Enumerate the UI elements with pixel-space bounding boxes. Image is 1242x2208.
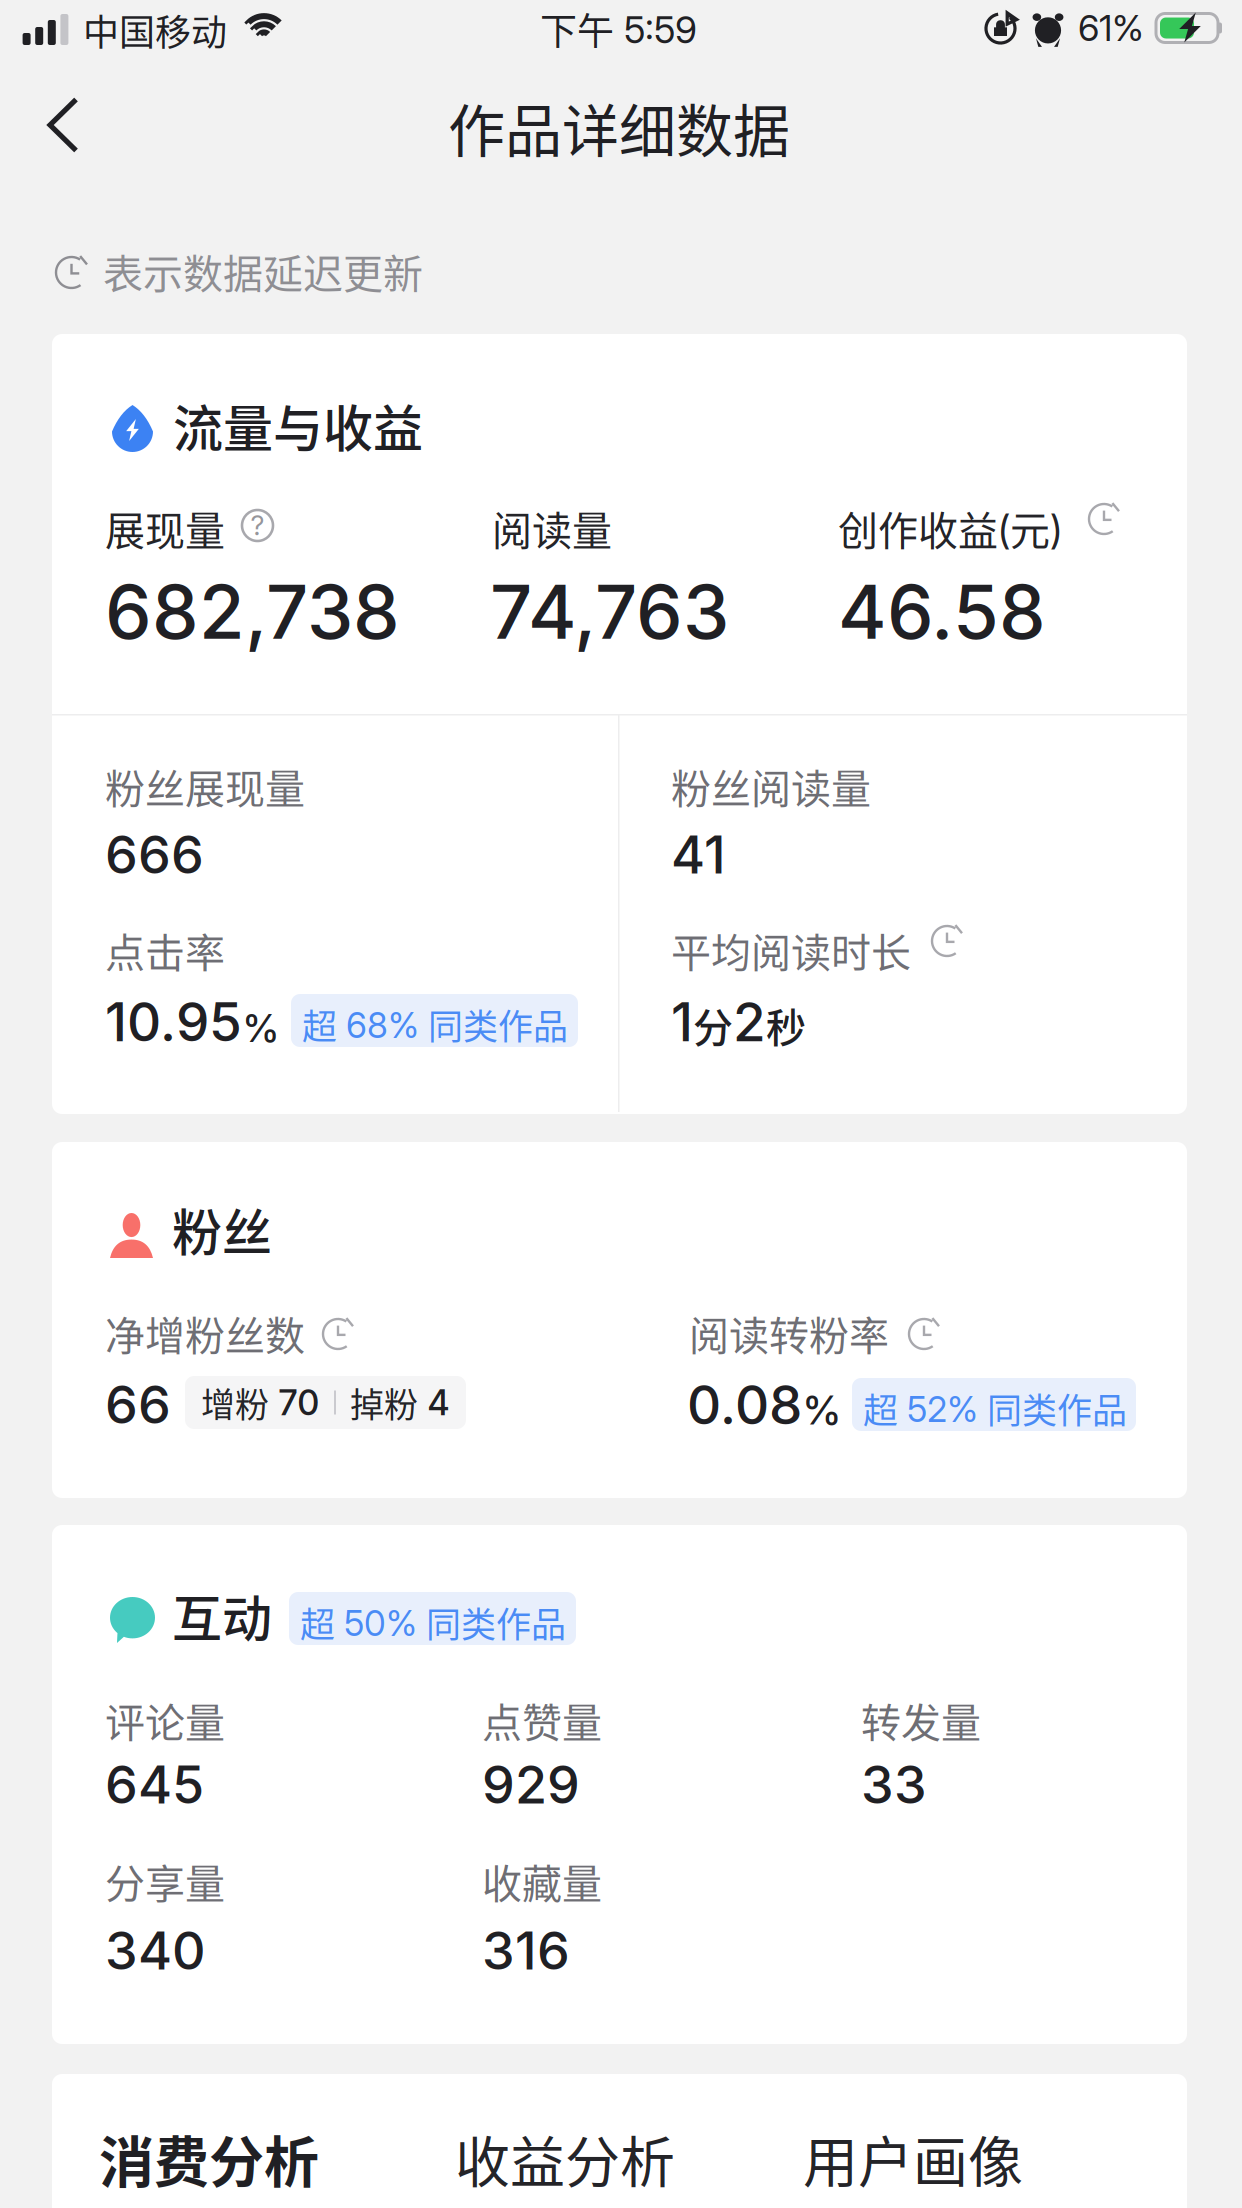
staticText: 点击率 — [105, 921, 225, 979]
staticText: 互动 — [172, 1579, 272, 1651]
staticText: 10.95 — [105, 990, 242, 1054]
staticText: 70 — [278, 1381, 320, 1424]
staticText: 316 — [482, 1919, 570, 1982]
staticText: 666 — [105, 823, 204, 886]
staticText: 掉粉 — [350, 1378, 418, 1427]
staticText: 下午 5:59 — [540, 2, 697, 56]
staticText: 0.08 — [687, 1373, 802, 1437]
staticText: 用户画像 — [803, 2118, 1023, 2198]
staticText: 645 — [105, 1753, 204, 1816]
staticText: 点赞量 — [482, 1691, 602, 1749]
staticText: 粉丝阅读量 — [671, 757, 871, 815]
staticText: 秒 — [766, 996, 806, 1054]
staticText: ? — [250, 509, 264, 542]
staticText: 分享量 — [105, 1852, 225, 1910]
staticText: 2 — [733, 990, 766, 1054]
staticText: 33 — [861, 1753, 927, 1816]
staticText: 净增粉丝数 — [105, 1304, 305, 1362]
button[interactable]: 返回 — [18, 80, 108, 170]
staticText: 929 — [482, 1753, 580, 1816]
staticText: 作品详细数据 — [448, 86, 790, 168]
staticText: 66 — [105, 1373, 171, 1436]
staticText: 增粉 — [201, 1378, 269, 1427]
staticText: 展现量 — [105, 499, 225, 557]
staticText: 粉丝 — [172, 1193, 272, 1265]
staticText: 消费分析 — [99, 2118, 319, 2198]
staticText: 超 50% 同类作品 — [300, 1597, 566, 1648]
staticText: 4 — [427, 1381, 450, 1424]
staticText: 平均阅读时长 — [671, 921, 911, 979]
button[interactable]: 展现量说明 — [231, 499, 284, 552]
staticText: 流量与收益 — [173, 389, 423, 461]
staticText: 阅读量 — [492, 499, 612, 557]
staticText: 转发量 — [861, 1691, 981, 1749]
staticText: 收藏量 — [482, 1852, 602, 1910]
staticText: 收益分析 — [455, 2118, 675, 2198]
staticText: 中国移动 — [83, 4, 227, 56]
staticText: % — [802, 1386, 842, 1434]
staticText: 创作收益(元) — [838, 499, 1062, 557]
staticText: 超 52% 同类作品 — [863, 1383, 1127, 1434]
staticText: 46.58 — [838, 567, 1046, 656]
staticText: 阅读转粉率 — [689, 1304, 889, 1362]
button[interactable]: 用户画像 — [797, 2106, 1029, 2208]
staticText: 682,738 — [105, 567, 400, 656]
staticText: 分 — [693, 996, 733, 1054]
staticText: 1 — [671, 990, 693, 1054]
button[interactable]: 收益分析 — [449, 2106, 681, 2208]
staticText: % — [242, 1005, 280, 1051]
staticText: 评论量 — [105, 1691, 225, 1749]
staticText: 74,763 — [490, 567, 729, 656]
staticText: 340 — [105, 1919, 206, 1982]
staticText: 表示数据延迟更新 — [103, 242, 423, 300]
staticText: 41 — [671, 823, 726, 886]
staticText: 61% — [1078, 6, 1144, 50]
button[interactable]: 消费分析 — [87, 2106, 331, 2208]
staticText: 粉丝展现量 — [105, 757, 305, 815]
staticText: 超 68% 同类作品 — [302, 999, 568, 1050]
